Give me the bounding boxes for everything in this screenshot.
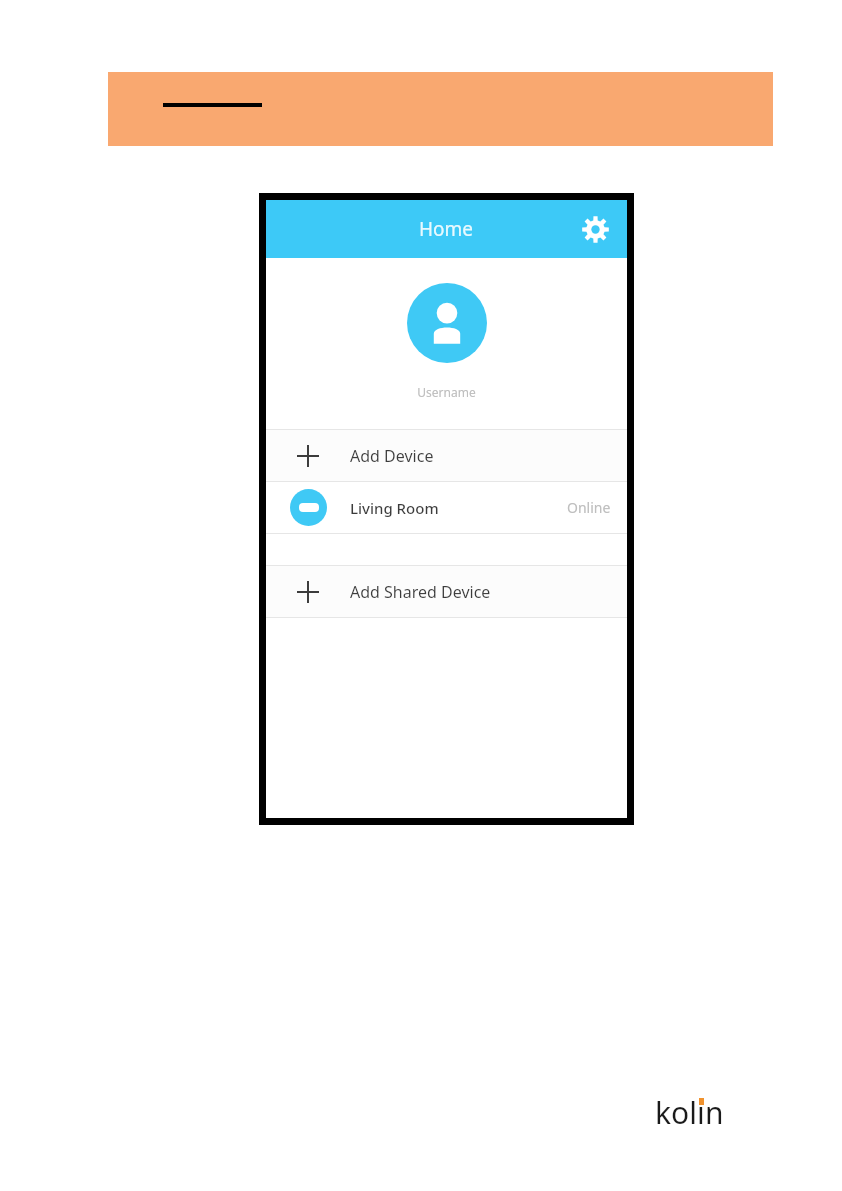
staticText: Username xyxy=(417,384,476,400)
staticText: Add Device xyxy=(350,445,434,467)
button[interactable]: Username xyxy=(266,258,627,429)
staticText: Add Shared Device xyxy=(350,581,491,603)
staticText: Living Room xyxy=(350,498,439,518)
button[interactable]: Add Device xyxy=(266,430,627,481)
button[interactable]: Add Shared Device xyxy=(266,566,627,617)
staticText: Online xyxy=(567,498,611,517)
staticText: i xyxy=(697,1092,705,1130)
staticText: n xyxy=(705,1092,724,1130)
staticText: kol xyxy=(655,1092,697,1130)
staticText: Home xyxy=(419,216,474,242)
button[interactable]: Living Room xyxy=(266,482,627,533)
button[interactable]: Settings xyxy=(577,211,613,247)
